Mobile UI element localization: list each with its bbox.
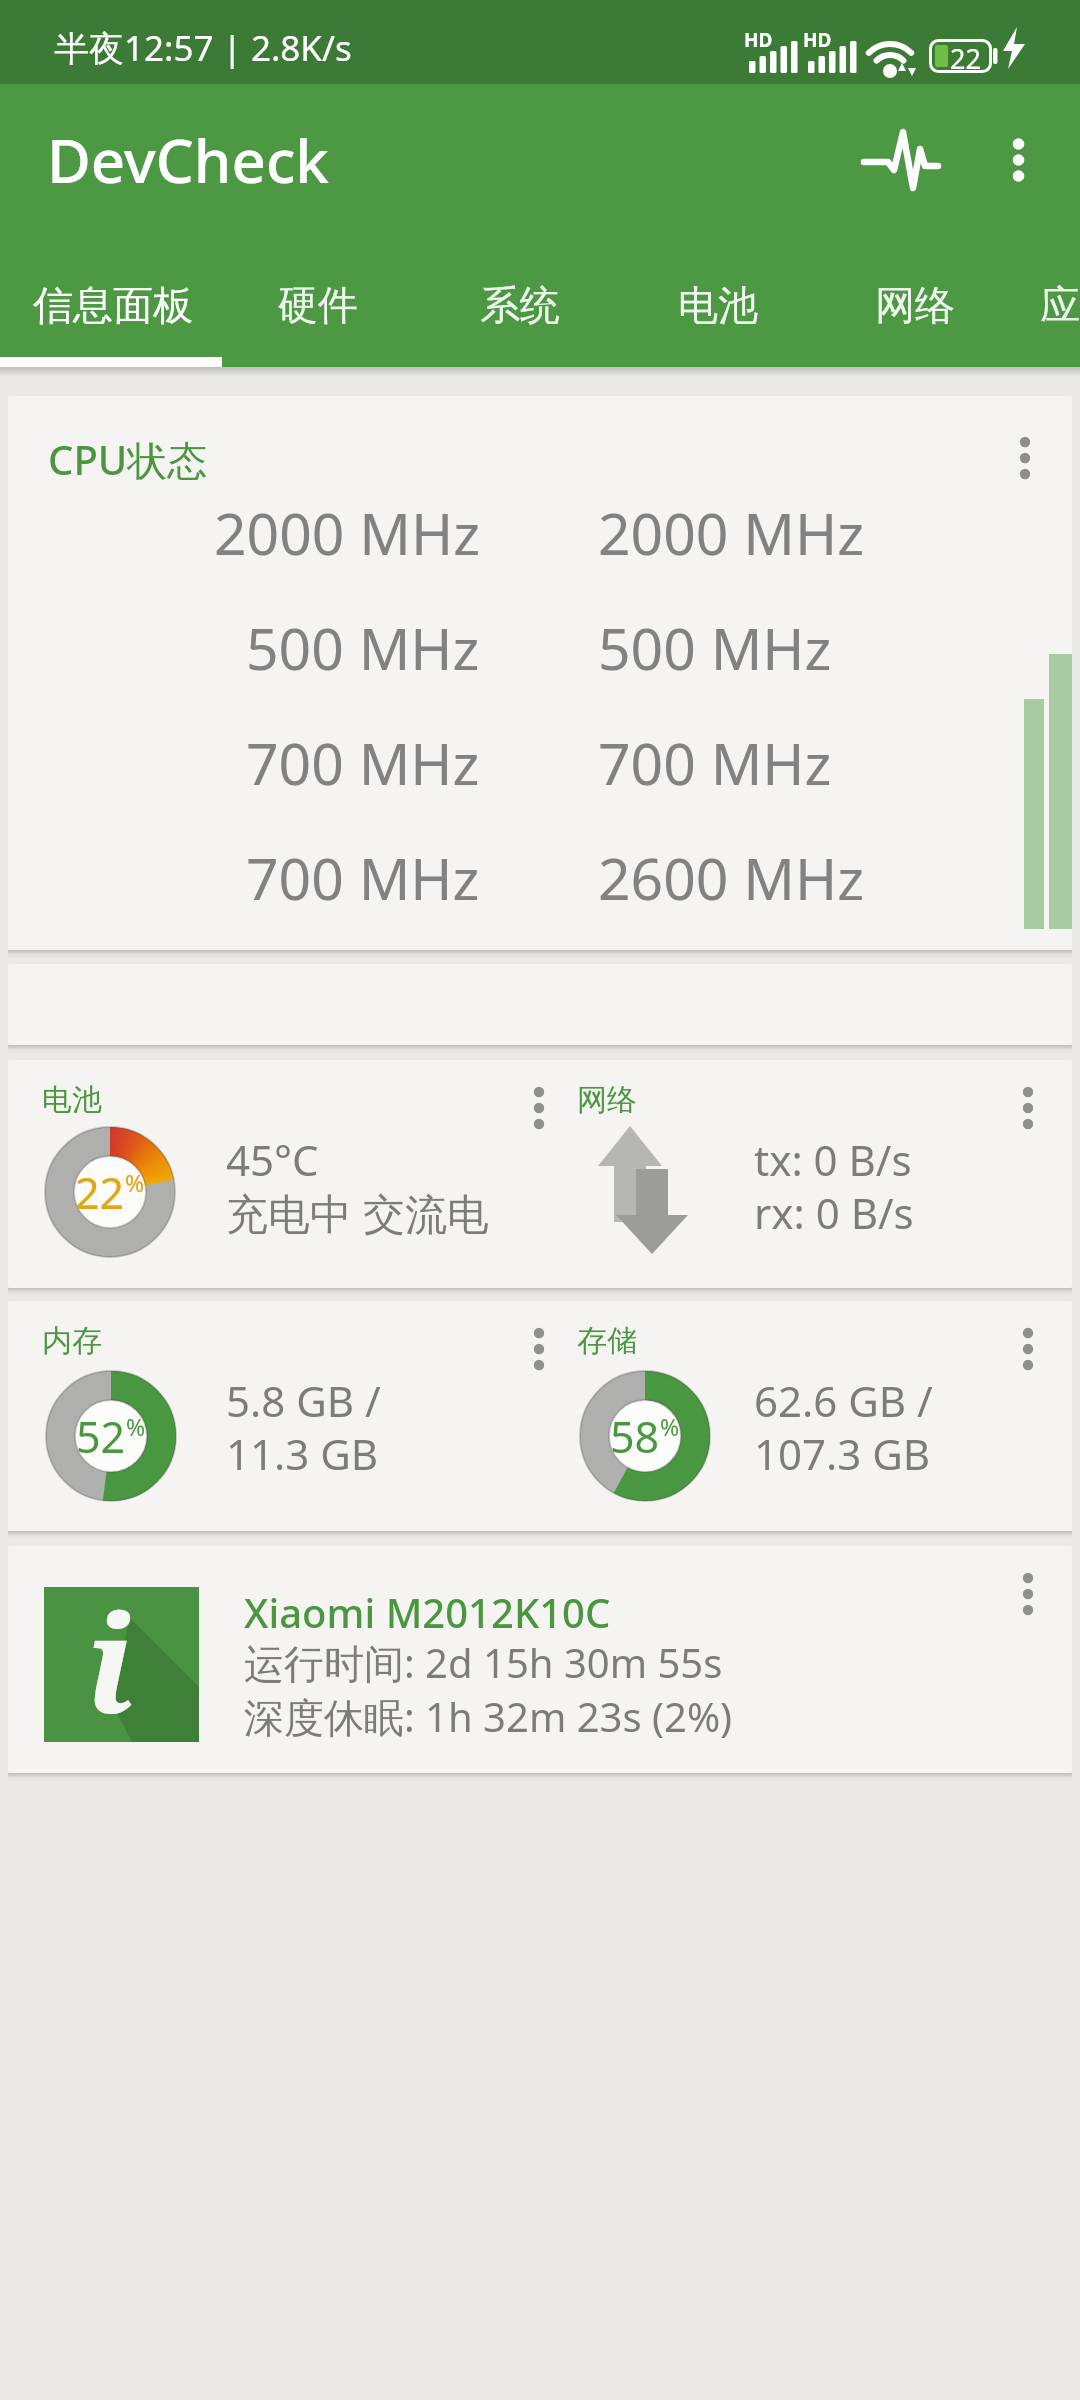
button[interactable] [1022,1327,1034,1371]
staticText: 700 MHz [598,724,832,796]
staticText: 2000 MHz [598,494,864,566]
staticText: 2000 MHz [214,494,480,566]
staticText: 硬件 [278,280,358,330]
staticText: Xiaomi M2012K10C [244,1585,611,1639]
staticText: 107.3 GB [754,1425,931,1482]
staticText: 500 MHz [598,609,832,681]
staticText: 存储 [577,1322,637,1360]
button[interactable]: 电池 [622,252,816,367]
staticText: HD [803,27,832,53]
button[interactable] [533,1327,545,1371]
staticText: 电池 [42,1081,102,1119]
staticText: 半夜12:57 | 2.8K/s [54,24,352,72]
button[interactable]: 硬件 [222,252,416,367]
staticText: % [126,1411,146,1442]
button[interactable] [533,1086,545,1130]
staticText: 700 MHz [246,724,480,796]
staticText: % [660,1411,680,1442]
button[interactable] [1022,1086,1034,1130]
staticText: 58 [610,1407,660,1466]
button[interactable] [1019,436,1031,480]
staticText: 应用 [1040,280,1080,330]
staticText: 5.8 GB / [226,1372,381,1429]
staticText: 45°C [226,1131,319,1188]
staticText: 信息面板 [33,280,193,330]
button[interactable] [862,122,940,198]
staticText: rx: 0 B/s [754,1184,914,1241]
staticText: 运行时间: 2d 15h 30m 55s [244,1635,723,1690]
staticText: 网络 [577,1081,637,1119]
button[interactable]: 信息面板 [0,252,222,367]
button[interactable]: 网络 [819,252,1013,367]
staticText: 电池 [678,280,758,330]
staticText: 充电中 交流电 [226,1184,489,1241]
staticText: 系统 [480,280,560,330]
button[interactable] [1012,138,1025,182]
staticText: DevCheck [47,119,329,201]
staticText: HD [744,27,773,53]
staticText: % [125,1167,145,1198]
staticText: 22 [950,40,981,77]
staticText: 深度休眠: 1h 32m 23s (2%) [244,1689,733,1744]
staticText: CPU状态 [48,432,208,487]
staticText: 22 [75,1163,125,1222]
staticText: 网络 [875,280,955,330]
staticText: i [86,1570,134,1753]
staticText: 52 [76,1407,126,1466]
staticText: tx: 0 B/s [754,1131,912,1188]
staticText: 内存 [42,1322,102,1360]
staticText: 700 MHz [246,839,480,911]
staticText: 500 MHz [246,609,480,681]
button[interactable]: 系统 [424,252,618,367]
button[interactable] [1022,1572,1034,1616]
button[interactable]: 应用 [984,252,1080,367]
staticText: 62.6 GB / [754,1372,933,1429]
staticText: 2600 MHz [598,839,864,911]
staticText: 11.3 GB [226,1425,379,1482]
